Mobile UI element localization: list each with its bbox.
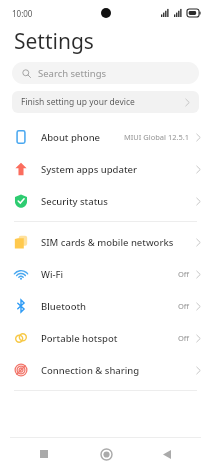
staticText: Portable hotspot xyxy=(41,332,118,345)
staticText: Settings xyxy=(14,27,94,56)
staticText: Security status xyxy=(41,195,108,208)
staticText: System apps updater xyxy=(41,163,137,176)
button[interactable]: About phone xyxy=(0,121,211,153)
staticText: SIM cards & mobile networks xyxy=(41,236,174,249)
button[interactable]: Back xyxy=(150,438,184,470)
button[interactable]: Home xyxy=(89,438,123,470)
button[interactable]: Portable hotspot xyxy=(0,322,211,354)
button[interactable]: System apps updater xyxy=(0,153,211,185)
button[interactable]: Bluetooth xyxy=(0,290,211,322)
button[interactable]: Connection & sharing xyxy=(0,354,211,386)
button[interactable]: Recent apps xyxy=(27,438,61,470)
staticText: Search settings xyxy=(38,67,107,80)
staticText: Off xyxy=(178,333,190,343)
staticText: Bluetooth xyxy=(41,300,87,313)
button[interactable]: Wi-Fi xyxy=(0,258,211,290)
staticText: Off xyxy=(178,269,190,279)
staticText: About phone xyxy=(41,131,101,144)
staticText: 10:00 xyxy=(12,8,33,19)
button[interactable]: Search settings xyxy=(12,62,199,84)
staticText: Off xyxy=(178,301,190,311)
button[interactable]: Finish setting up your device xyxy=(12,91,199,113)
staticText: Connection & sharing xyxy=(41,364,140,377)
button[interactable]: Security status xyxy=(0,185,211,217)
staticText: Finish setting up your device xyxy=(21,96,135,108)
staticText: Wi-Fi xyxy=(41,268,64,281)
staticText: MIUI Global 12.5.1 xyxy=(124,132,190,142)
button[interactable]: SIM cards & mobile networks xyxy=(0,226,211,258)
